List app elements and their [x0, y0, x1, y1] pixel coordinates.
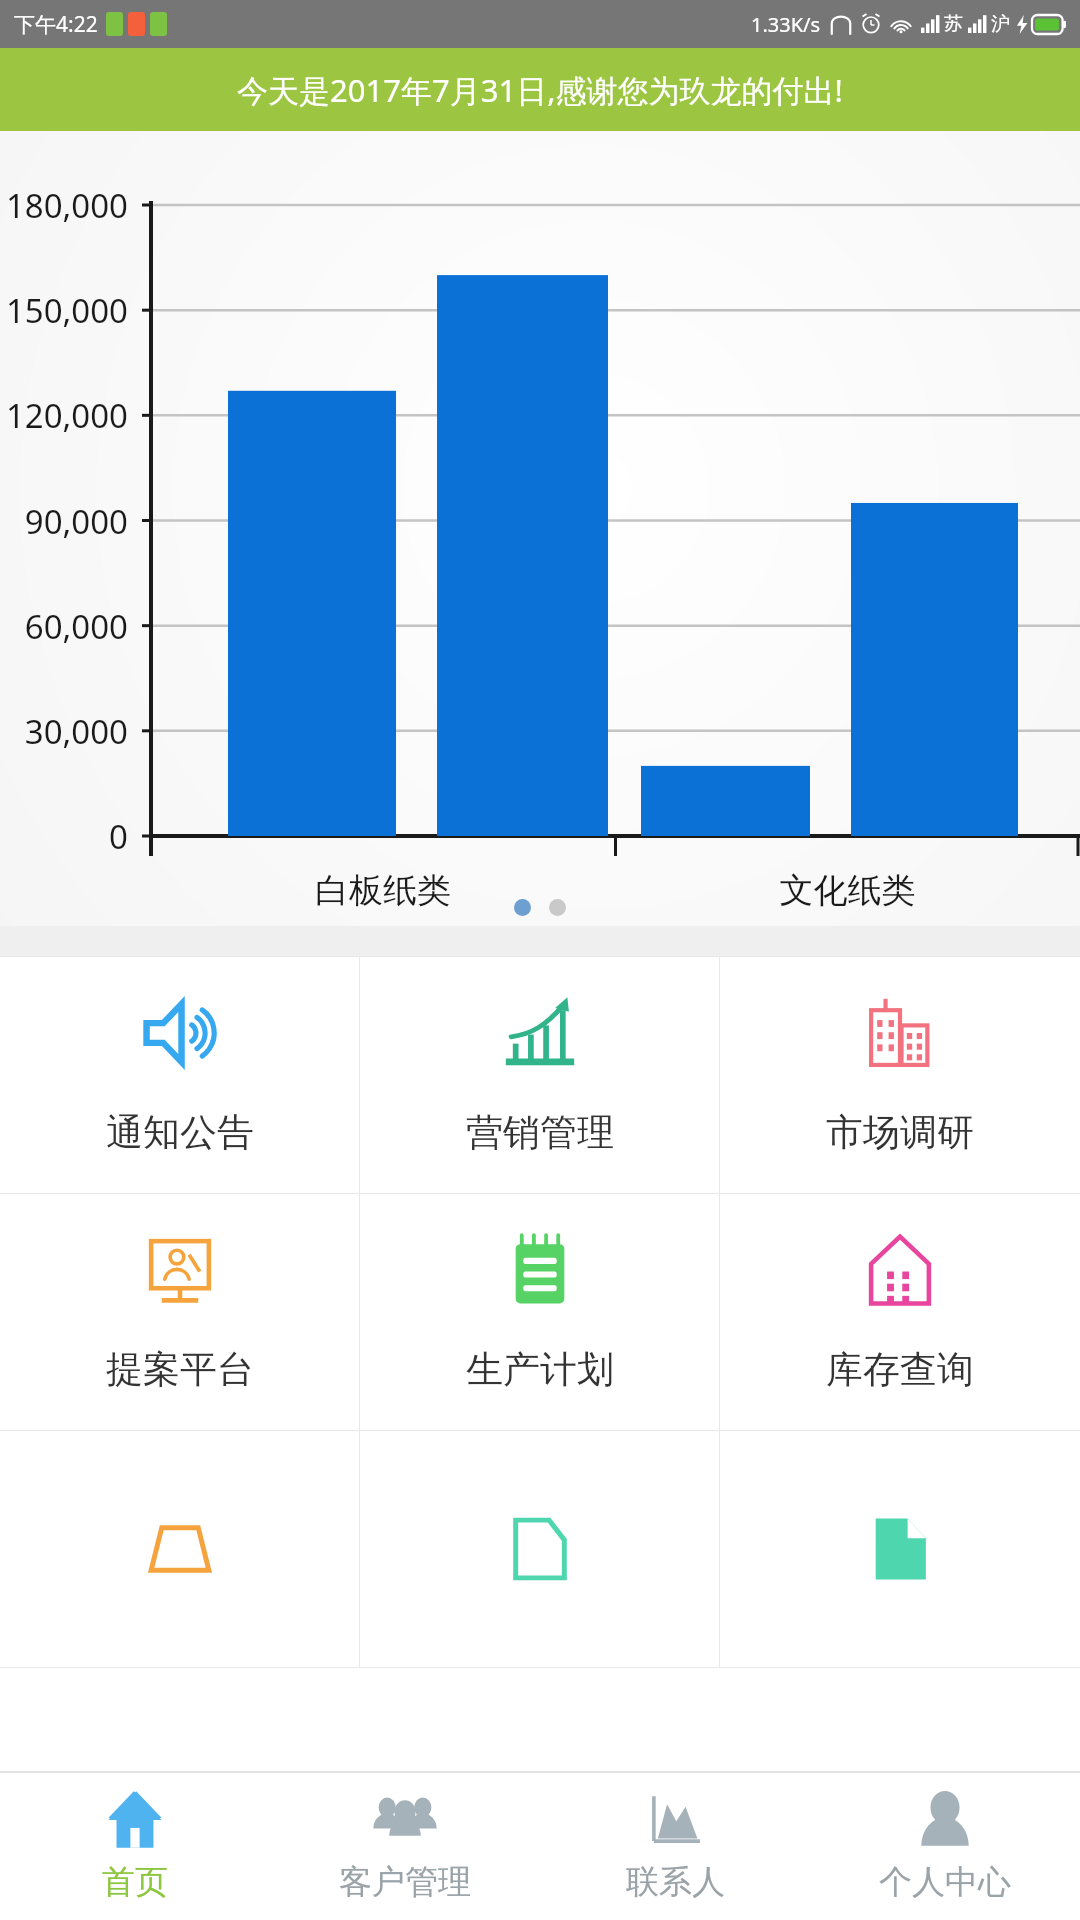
button[interactable]: 库存查询 — [720, 1194, 1080, 1430]
staticText: 白板纸类 — [151, 869, 615, 912]
staticText: 通知公告 — [106, 1109, 254, 1156]
button[interactable]: 提案平台 — [0, 1194, 360, 1430]
button[interactable]: 客户管理 — [270, 1773, 540, 1920]
button[interactable] — [0, 1431, 360, 1667]
staticText: 120,000 — [0, 393, 128, 438]
staticText: 90,000 — [0, 499, 128, 544]
button[interactable]: 联系人 — [540, 1773, 810, 1920]
button[interactable] — [720, 1431, 1080, 1667]
staticText: 今天是2017年7月31日,感谢您为玖龙的付出! — [237, 69, 843, 111]
button[interactable]: 生产计划 — [360, 1194, 720, 1430]
staticText: 1.33K/s — [751, 11, 821, 38]
staticText: 苏 — [944, 12, 963, 36]
staticText: 营销管理 — [466, 1109, 614, 1156]
staticText: 客户管理 — [339, 1861, 471, 1903]
staticText: 首页 — [102, 1861, 168, 1903]
staticText: 市场调研 — [826, 1109, 974, 1156]
staticText: 文化纸类 — [615, 869, 1080, 912]
staticText: 个人中心 — [879, 1861, 1011, 1903]
staticText: 生产计划 — [466, 1346, 614, 1393]
staticText: 60,000 — [0, 604, 128, 649]
staticText: 联系人 — [626, 1861, 725, 1903]
staticText: 0 — [0, 814, 128, 859]
staticText: 150,000 — [0, 288, 128, 333]
staticText: 沪 — [991, 12, 1010, 36]
button[interactable] — [360, 1431, 720, 1667]
staticText: 30,000 — [0, 709, 128, 754]
button[interactable]: 首页 — [0, 1773, 270, 1920]
staticText: 提案平台 — [106, 1346, 254, 1393]
staticText: 库存查询 — [826, 1346, 974, 1393]
button[interactable]: 个人中心 — [810, 1773, 1080, 1920]
button[interactable]: 营销管理 — [360, 957, 720, 1193]
staticText: 180,000 — [0, 183, 128, 228]
staticText: 下午4:22 — [14, 10, 98, 39]
button[interactable]: 市场调研 — [720, 957, 1080, 1193]
button[interactable]: 通知公告 — [0, 957, 360, 1193]
